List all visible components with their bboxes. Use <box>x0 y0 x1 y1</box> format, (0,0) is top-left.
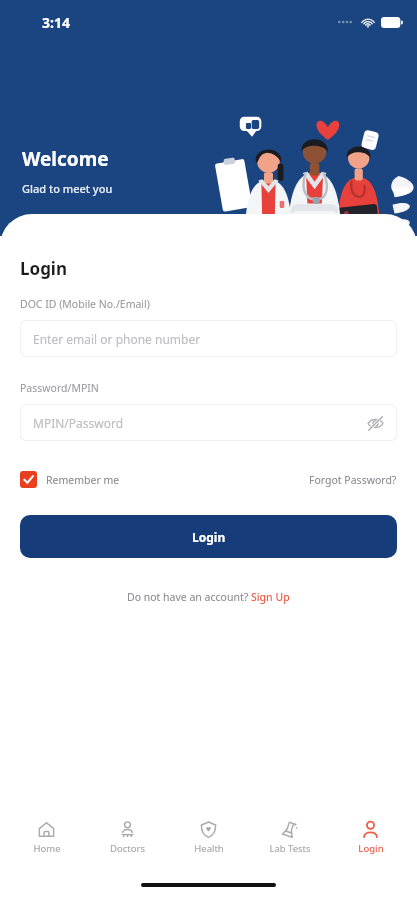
button[interactable]: Show password <box>363 411 387 435</box>
button[interactable]: Lab Tests <box>249 817 330 859</box>
staticText: Remember me <box>46 473 120 487</box>
staticText: Enter email or phone number <box>33 331 201 347</box>
staticText: DOC ID (Mobile No./Email) <box>20 297 150 311</box>
staticText: Password/MPIN <box>20 381 99 395</box>
staticText: Login <box>192 529 226 545</box>
staticText: Do not have an account? <box>127 590 251 604</box>
staticText: Health <box>194 842 224 855</box>
button[interactable]: Health <box>168 817 249 859</box>
staticText: 3:14 <box>42 13 70 32</box>
button[interactable]: Doctors <box>87 817 168 859</box>
button[interactable]: Sign Up <box>251 590 290 604</box>
button[interactable]: Home <box>6 817 87 859</box>
button[interactable]: Enter email or phone number <box>20 320 397 357</box>
button[interactable]: Remember me <box>20 468 120 491</box>
staticText: Welcome <box>22 146 109 172</box>
staticText: Doctors <box>110 842 145 855</box>
staticText: Login <box>358 842 384 855</box>
staticText: Login <box>20 257 68 280</box>
staticText: Sign Up <box>251 590 290 604</box>
staticText: MPIN/Password <box>33 415 124 431</box>
staticText: Forgot Password? <box>309 473 397 487</box>
button[interactable]: Login <box>330 817 411 859</box>
button[interactable]: Login <box>20 515 397 558</box>
button[interactable]: Forgot Password? <box>309 470 397 490</box>
staticText: Home <box>33 842 61 855</box>
staticText: Lab Tests <box>269 842 311 855</box>
staticText: Glad to meet you <box>22 181 113 196</box>
button[interactable]: MPIN/Password <box>20 404 397 441</box>
